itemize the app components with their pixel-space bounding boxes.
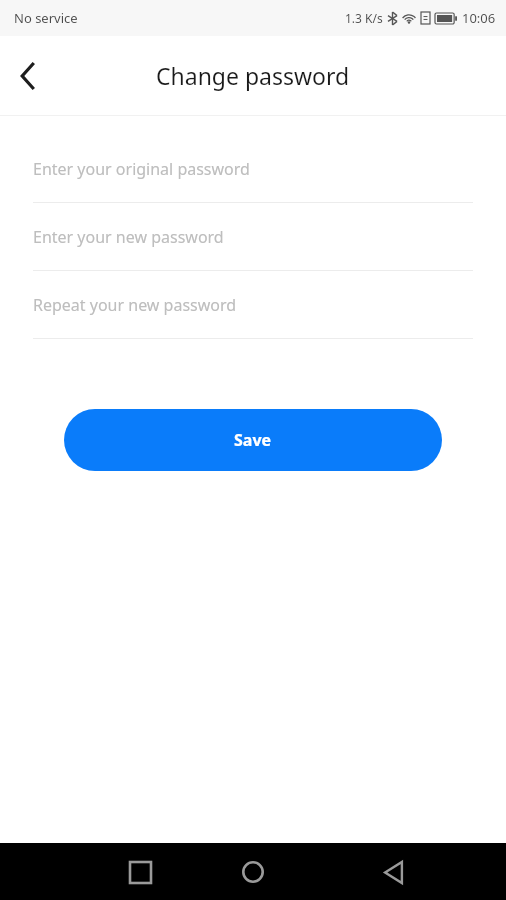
button[interactable]: Back: [0, 47, 58, 105]
button[interactable]: Save: [64, 409, 442, 471]
button[interactable]: Enter your original password: [0, 135, 506, 202]
staticText: Enter your original password: [33, 158, 250, 180]
staticText: 10:06: [462, 9, 496, 27]
staticText: Enter your new password: [33, 226, 224, 248]
staticText: 1.3 K/s: [345, 10, 383, 26]
staticText: Save: [234, 429, 272, 451]
button[interactable]: Repeat your new password: [0, 271, 506, 338]
button[interactable]: Enter your new password: [0, 203, 506, 270]
button[interactable]: Home: [225, 844, 281, 900]
staticText: Change password: [156, 60, 350, 91]
button[interactable]: Back: [365, 844, 421, 900]
button[interactable]: Recents: [112, 844, 168, 900]
staticText: Repeat your new password: [33, 294, 237, 316]
staticText: No service: [14, 9, 78, 27]
